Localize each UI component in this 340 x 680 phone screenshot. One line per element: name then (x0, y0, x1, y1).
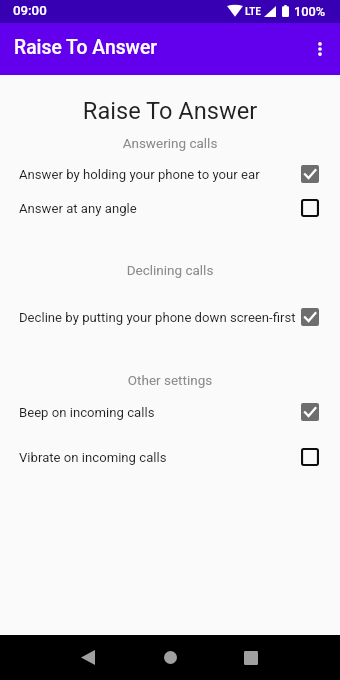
button[interactable]: Recents (227, 635, 275, 680)
staticText: 100% (294, 4, 326, 19)
button[interactable]: Answer at any angle (0, 191, 340, 225)
staticText: Answering calls (0, 135, 340, 151)
staticText: Beep on incoming calls (19, 405, 296, 420)
staticText: Vibrate on incoming calls (19, 450, 296, 465)
button[interactable]: Answer by holding your phone to your ear (0, 157, 340, 191)
button[interactable]: Decline by putting your phone down scree… (0, 300, 340, 334)
button[interactable]: Back (64, 635, 112, 680)
button[interactable]: Vibrate on incoming calls (0, 440, 340, 474)
staticText: Answer at any angle (19, 201, 296, 216)
staticText: LTE (245, 4, 261, 17)
staticText: Raise To Answer (14, 36, 158, 59)
staticText: 09:00 (13, 3, 47, 19)
button[interactable]: Home (146, 635, 194, 680)
staticText: Answer by holding your phone to your ear (19, 167, 296, 182)
staticText: Raise To Answer (0, 97, 340, 125)
staticText: Other settings (0, 372, 340, 388)
button[interactable]: Beep on incoming calls (0, 395, 340, 429)
staticText: Declining calls (0, 262, 340, 278)
button[interactable]: More options (300, 29, 340, 69)
staticText: Decline by putting your phone down scree… (19, 310, 296, 325)
